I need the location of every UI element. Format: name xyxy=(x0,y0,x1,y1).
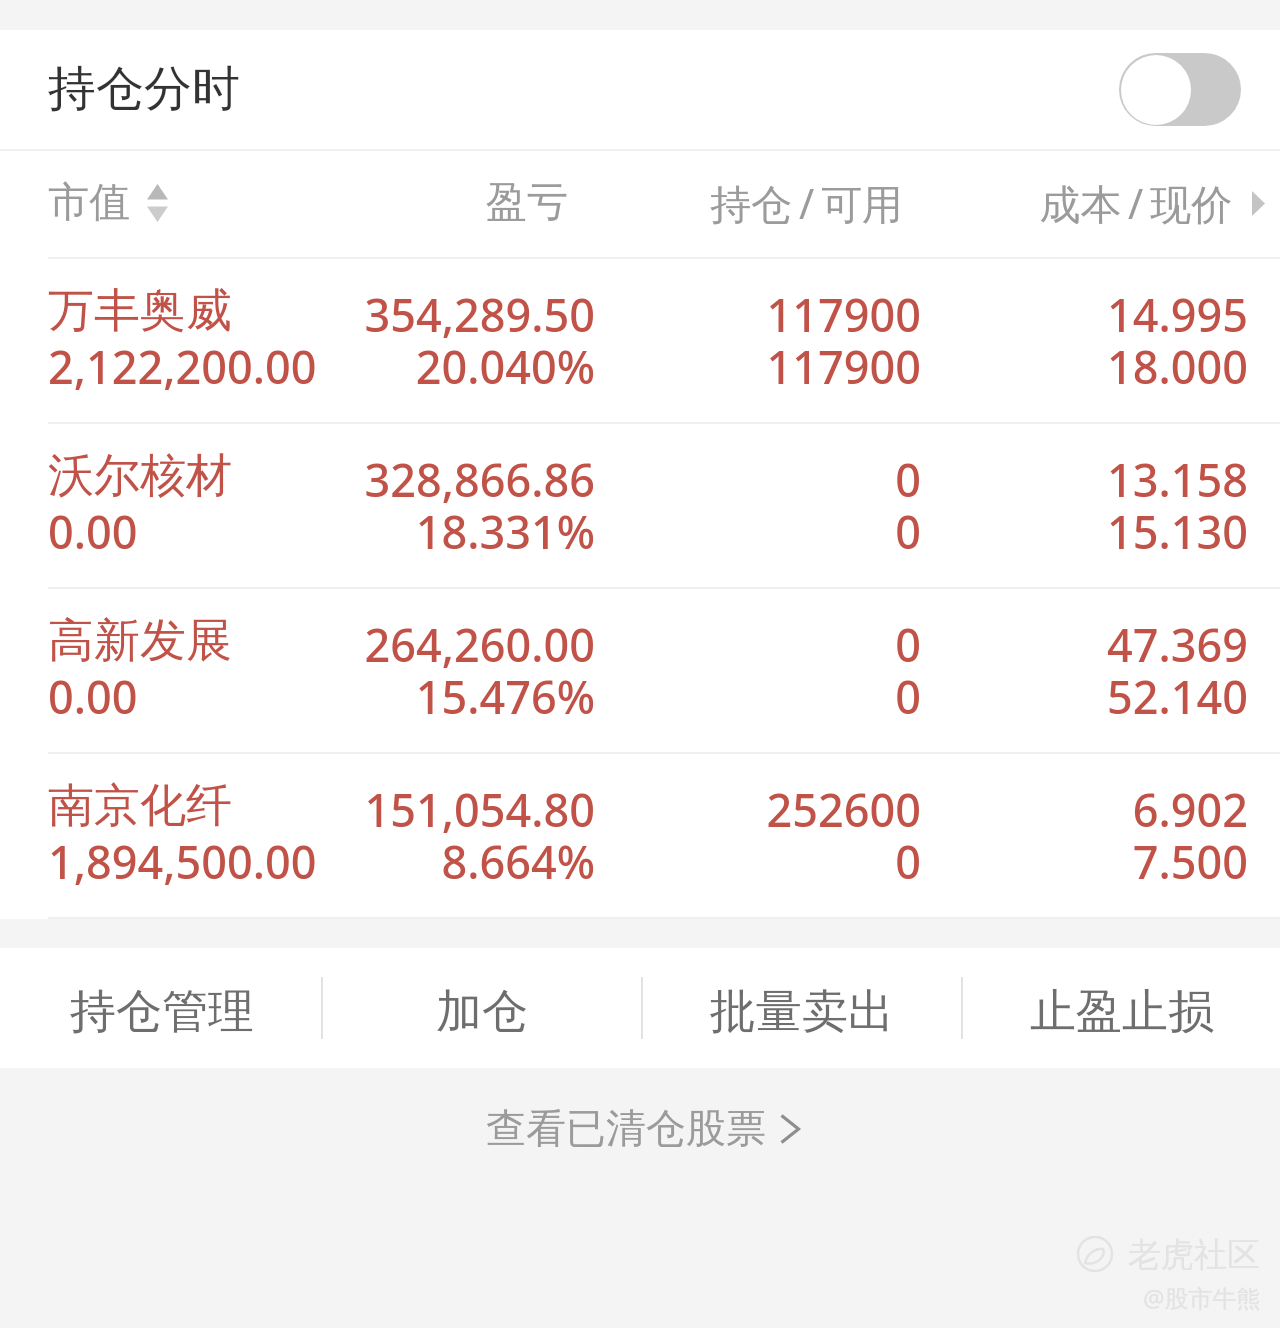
button[interactable]: More columns xyxy=(1252,191,1265,216)
staticText: 0 xyxy=(0,449,921,510)
staticText: 8.664% xyxy=(0,831,595,892)
staticText: 328,866.86 xyxy=(0,449,595,510)
button[interactable]: 批量卖出 xyxy=(640,948,960,1068)
staticText: 47.369 xyxy=(0,614,1248,675)
staticText: 0 xyxy=(0,501,921,562)
staticText: 万丰奥威 xyxy=(48,282,232,340)
staticText: 高新发展 xyxy=(48,612,232,670)
staticText: 老虎社区 xyxy=(1128,1234,1260,1276)
button[interactable]: 沃尔核材 xyxy=(0,424,1280,587)
staticText: 0.00 xyxy=(48,666,138,727)
staticText: 264,260.00 xyxy=(0,614,595,675)
staticText: 14.995 xyxy=(0,284,1248,345)
staticText: 18.000 xyxy=(0,336,1248,397)
staticText: 0 xyxy=(0,666,921,727)
staticText: 止盈止损 xyxy=(1030,983,1214,1041)
staticText: 沃尔核材 xyxy=(48,447,232,505)
staticText: 加仓 xyxy=(436,983,528,1041)
staticText: 持仓 / 可用 xyxy=(710,175,903,231)
staticText: 52.140 xyxy=(0,666,1248,727)
staticText: 117900 xyxy=(0,336,921,397)
staticText: 0 xyxy=(0,831,921,892)
button[interactable]: 南京化纤 xyxy=(0,754,1280,917)
staticText: 15.130 xyxy=(0,501,1248,562)
button[interactable]: Toggle intraday chart xyxy=(1119,53,1241,126)
staticText: 13.158 xyxy=(0,449,1248,510)
staticText: 1,894,500.00 xyxy=(48,831,317,892)
staticText: 2,122,200.00 xyxy=(48,336,317,397)
button[interactable]: 持仓管理 xyxy=(0,948,320,1068)
staticText: @股市牛熊 xyxy=(1143,1281,1261,1314)
button[interactable]: 成本 / 现价 xyxy=(972,151,1232,257)
staticText: 0 xyxy=(0,614,921,675)
button[interactable]: 市值 xyxy=(48,177,168,229)
staticText: 0.00 xyxy=(48,501,138,562)
button[interactable]: 持仓 / 可用 xyxy=(643,151,903,257)
staticText: 252600 xyxy=(0,779,921,840)
button[interactable]: 盈亏 xyxy=(368,151,568,257)
button[interactable]: 高新发展 xyxy=(0,589,1280,752)
button[interactable]: 查看已清仓股票 xyxy=(477,1095,809,1161)
staticText: 批量卖出 xyxy=(710,983,894,1041)
staticText: 117900 xyxy=(0,284,921,345)
staticText: 18.331% xyxy=(0,501,595,562)
staticText: 南京化纤 xyxy=(48,777,232,835)
button[interactable]: 万丰奥威 xyxy=(0,259,1280,422)
staticText: 354,289.50 xyxy=(0,284,595,345)
staticText: 7.500 xyxy=(0,831,1248,892)
button[interactable]: 加仓 xyxy=(320,948,640,1068)
button[interactable]: 止盈止损 xyxy=(960,948,1280,1068)
staticText: 151,054.80 xyxy=(0,779,595,840)
staticText: 持仓分时 xyxy=(48,59,240,119)
staticText: 15.476% xyxy=(0,666,595,727)
staticText: 20.040% xyxy=(0,336,595,397)
staticText: 查看已清仓股票 xyxy=(486,1103,766,1153)
staticText: 6.902 xyxy=(0,779,1248,840)
staticText: 持仓管理 xyxy=(70,983,254,1041)
staticText: 盈亏 xyxy=(486,177,568,229)
staticText: 市值 xyxy=(48,177,130,229)
staticText: 成本 / 现价 xyxy=(1039,175,1232,231)
